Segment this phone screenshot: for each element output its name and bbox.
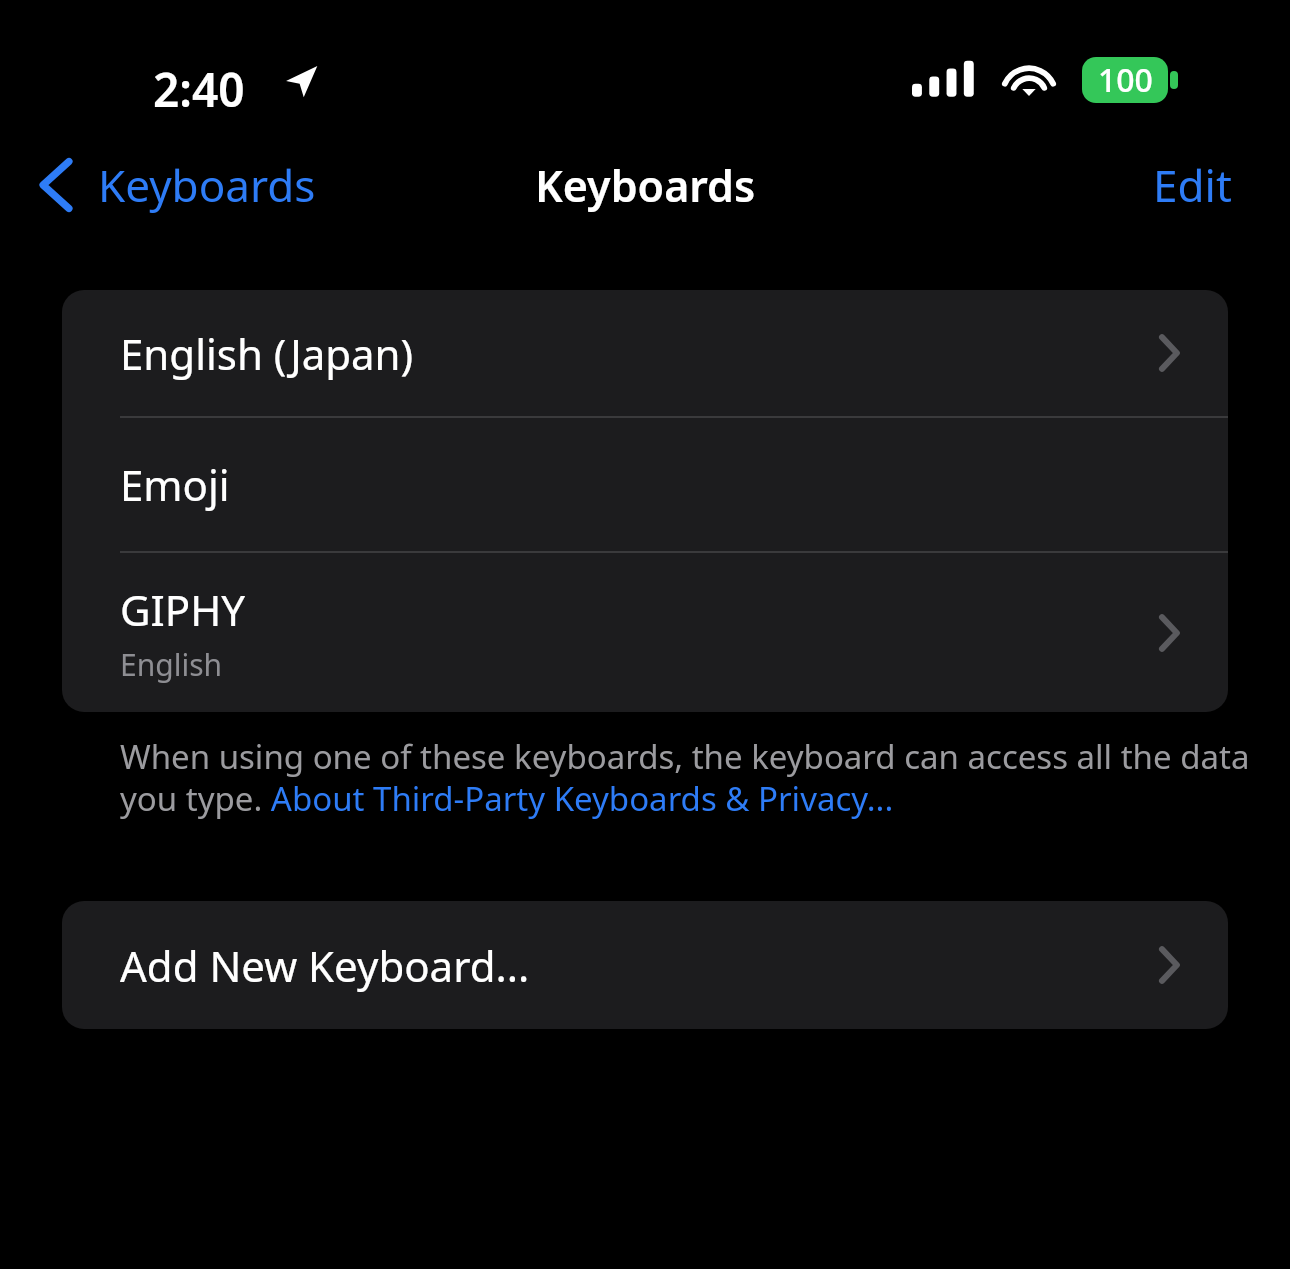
staticText: 100 — [1098, 58, 1153, 102]
staticText: English (Japan) — [120, 325, 414, 382]
button[interactable]: English (Japan) — [62, 290, 1228, 416]
staticText: When using one of these keyboards, the k… — [120, 734, 1284, 821]
button[interactable]: Add New Keyboard... — [62, 901, 1228, 1029]
button[interactable]: Emoji — [62, 418, 1228, 551]
button[interactable]: Edit — [1095, 145, 1290, 225]
staticText: 2:40 — [153, 58, 245, 121]
staticText: GIPHY — [120, 581, 246, 638]
staticText: Keyboards — [535, 156, 756, 215]
staticText: Add New Keyboard... — [120, 937, 530, 994]
button[interactable]: GIPHY — [62, 553, 1228, 712]
button[interactable]: When using one of these keyboards, the k… — [120, 734, 1284, 821]
staticText: English — [120, 644, 223, 685]
staticText: Keyboards — [98, 155, 316, 215]
button[interactable]: Keyboards — [0, 147, 330, 223]
staticText: Emoji — [120, 456, 230, 513]
staticText: Edit — [1153, 155, 1232, 215]
